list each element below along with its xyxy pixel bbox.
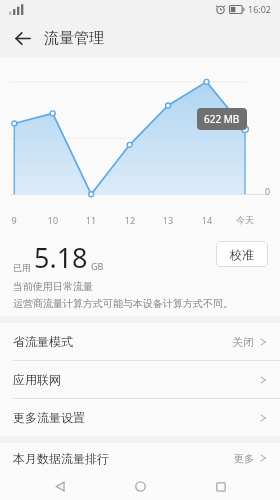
staticText: 当前使用日常流量: [13, 280, 93, 293]
staticText: 今天: [231, 214, 259, 225]
staticText: 5.18: [34, 239, 88, 276]
button[interactable]: 本月数据流量排行: [0, 443, 280, 473]
staticText: GB: [91, 260, 104, 272]
button[interactable]: 校准: [216, 241, 268, 267]
staticText: 12: [116, 214, 144, 226]
staticText: 14: [193, 214, 221, 226]
button[interactable]: Home: [119, 473, 161, 500]
staticText: 流量管理: [44, 29, 104, 48]
button[interactable]: 更多流量设置: [0, 399, 280, 436]
button[interactable]: Back: [6, 22, 38, 54]
staticText: 更多流量设置: [13, 410, 85, 425]
staticText: 运营商流量计算方式可能与本设备计算方式不同。: [13, 297, 233, 310]
staticText: 应用联网: [13, 372, 61, 387]
staticText: 0: [265, 185, 271, 197]
button[interactable]: Recent apps: [200, 473, 242, 500]
staticText: 13: [154, 214, 182, 226]
button[interactable]: 应用联网: [0, 361, 280, 398]
staticText: 16:02: [248, 3, 272, 15]
staticText: 本月数据流量排行: [13, 451, 109, 466]
staticText: 校准: [230, 247, 254, 262]
staticText: 已用: [13, 262, 31, 273]
staticText: 省流量模式: [13, 334, 73, 349]
staticText: 9: [0, 214, 28, 226]
staticText: 622 MB: [204, 112, 240, 126]
button[interactable]: 省流量模式: [0, 323, 280, 360]
button[interactable]: Back: [39, 473, 81, 500]
staticText: 10: [39, 214, 67, 226]
staticText: 更多: [234, 452, 254, 465]
staticText: 关闭: [232, 335, 254, 349]
staticText: 11: [77, 214, 105, 226]
